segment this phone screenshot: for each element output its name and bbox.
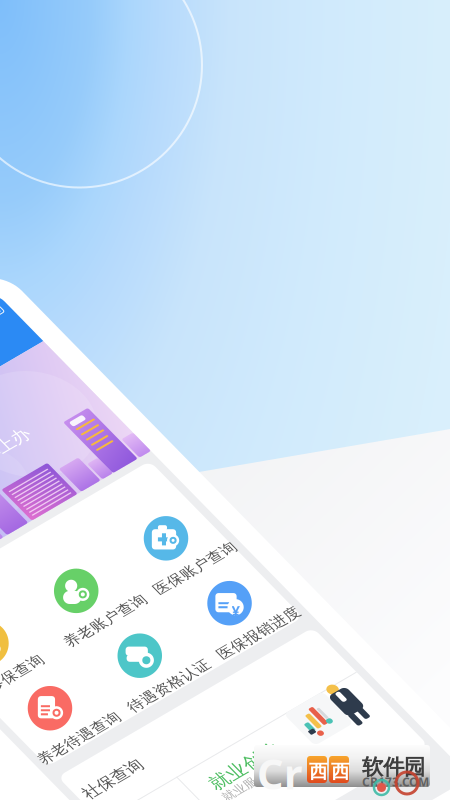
staticText: Cr <box>257 746 302 800</box>
staticText: 就业服务指南 <box>112 546 184 561</box>
staticText: CR173.COM <box>362 774 429 790</box>
staticText: 参保查询 <box>21 331 81 349</box>
button[interactable]: ¥ <box>0 217 305 397</box>
button[interactable]: 医保账户查询 <box>0 217 305 397</box>
staticText: 养老账户查询 <box>107 331 197 349</box>
staticText: 社保查询 <box>14 471 78 491</box>
staticText: 养老待遇查询 <box>6 419 96 437</box>
staticText: 智慧人社 <box>117 34 209 62</box>
button[interactable]: 待遇资格认证 <box>0 217 305 397</box>
staticText: 智慧人社 · 掌上办 <box>96 126 230 149</box>
staticText: 就业创业 <box>112 525 188 548</box>
staticText: 西 <box>309 760 328 783</box>
staticText: 西 <box>331 760 350 783</box>
staticText: 软件园 <box>362 754 425 780</box>
button[interactable]: 养老账户查询 <box>0 217 305 397</box>
staticText: 待遇资格认证 <box>107 419 197 437</box>
button[interactable]: 养老待遇查询 <box>0 217 305 397</box>
button[interactable]: 参保查询 <box>0 217 305 397</box>
